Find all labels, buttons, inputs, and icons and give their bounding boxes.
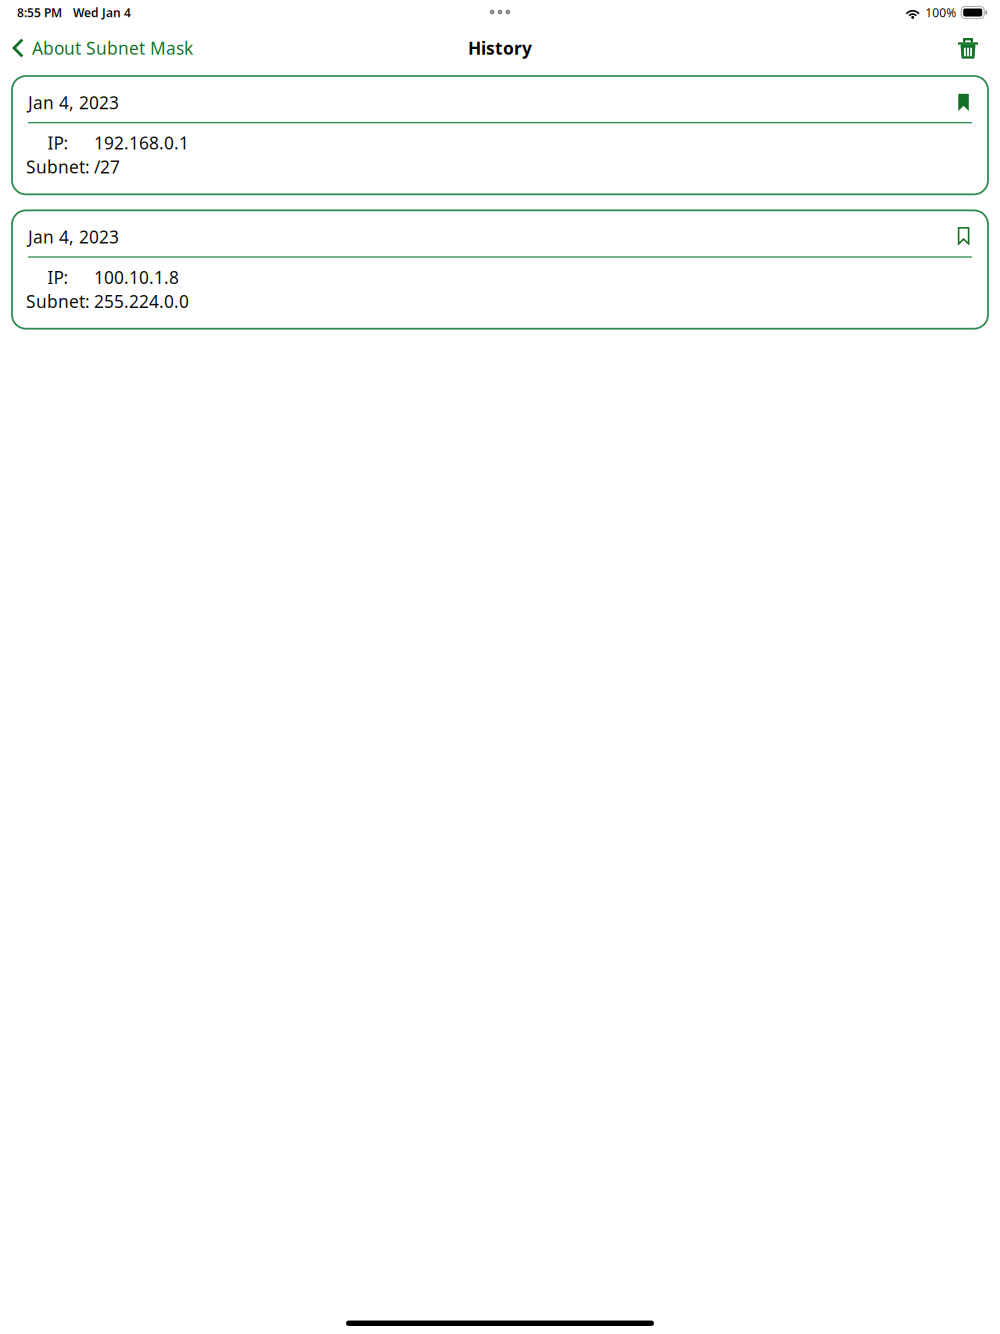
staticText: 192.168.0.1	[94, 131, 189, 154]
staticText: Jan 4, 2023	[28, 225, 119, 248]
staticText: 255.224.0.0	[94, 290, 189, 313]
staticText: 8:55 PM	[17, 4, 62, 20]
button[interactable]: Remove bookmark	[957, 92, 970, 112]
staticText: IP:	[47, 131, 68, 154]
staticText: 100%	[925, 4, 956, 20]
staticText: Subnet:	[26, 290, 90, 313]
staticText: Wed Jan 4	[73, 4, 131, 20]
staticText: History	[468, 36, 532, 59]
button[interactable]: Jan 4, 2023	[12, 76, 988, 194]
button[interactable]: About Subnet Mask	[12, 32, 193, 63]
staticText: IP:	[47, 266, 68, 289]
button[interactable]: Jan 4, 2023	[12, 210, 988, 329]
staticText: About Subnet Mask	[32, 36, 193, 59]
staticText: Subnet:	[26, 155, 90, 178]
staticText: Jan 4, 2023	[28, 91, 119, 114]
staticText: /27	[94, 155, 120, 178]
button[interactable]: Delete history	[957, 32, 979, 63]
staticText: 100.10.1.8	[94, 266, 179, 289]
button[interactable]: Add bookmark	[957, 227, 970, 247]
